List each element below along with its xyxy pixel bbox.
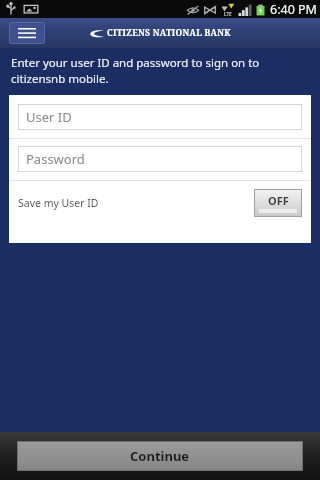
staticText: Continue xyxy=(130,447,190,465)
staticText: CITIZENS NATIONAL BANK xyxy=(107,27,231,39)
staticText: OFF xyxy=(268,193,289,208)
staticText: Enter your user ID and password to sign … xyxy=(11,55,296,86)
button[interactable]: Save my User ID xyxy=(18,182,302,224)
staticText: 6:40 PM xyxy=(270,1,317,18)
staticText: Password xyxy=(26,150,85,168)
button[interactable]: Menu xyxy=(9,22,45,44)
button[interactable]: Continue xyxy=(17,441,303,471)
button[interactable]: Password xyxy=(18,146,302,172)
button[interactable]: User ID xyxy=(18,104,302,130)
button[interactable]: Save my User ID toggle, off xyxy=(254,189,302,217)
staticText: LTE xyxy=(224,11,232,17)
staticText: Save my User ID xyxy=(18,196,99,210)
staticText: User ID xyxy=(26,108,72,126)
